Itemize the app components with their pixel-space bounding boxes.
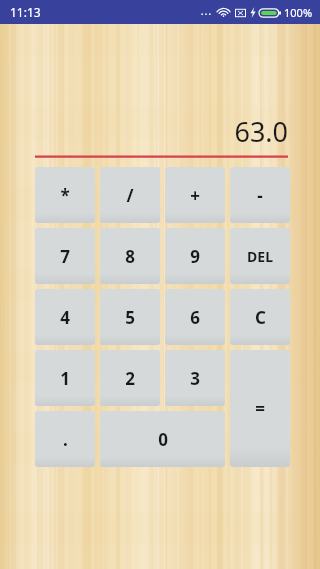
staticText: 100% [284,5,313,20]
button[interactable]: 4 [35,289,95,345]
staticText: 4 [60,306,70,329]
staticText: 11:13 [10,4,41,20]
staticText: . [63,428,68,451]
button[interactable]: + [165,167,225,223]
button[interactable]: 2 [100,350,160,406]
button[interactable]: 6 [165,289,225,345]
button[interactable]: - [230,167,290,223]
staticText: 1 [60,367,70,390]
button[interactable]: 1 [35,350,95,406]
button[interactable]: 0 [100,411,225,467]
staticText: * [60,184,70,207]
staticText: DEL [247,247,273,266]
staticText: - [257,184,263,207]
button[interactable]: DEL [230,228,290,284]
staticText: 5 [125,306,135,329]
button[interactable]: 5 [100,289,160,345]
staticText: 6 [190,306,200,329]
button[interactable]: * [35,167,95,223]
button[interactable]: = [230,350,290,467]
button[interactable]: 3 [165,350,225,406]
button[interactable]: 8 [100,228,160,284]
staticText: 8 [125,245,135,268]
staticText: 2 [125,367,135,390]
staticText: 63.0 [234,113,288,150]
staticText: + [190,184,200,207]
button[interactable]: / [100,167,160,223]
staticText: 3 [190,367,200,390]
button[interactable]: . [35,411,95,467]
staticText: / [126,184,134,207]
button[interactable]: 7 [35,228,95,284]
staticText: 9 [190,245,200,268]
button[interactable]: 9 [165,228,225,284]
staticText: 0 [158,428,168,451]
button[interactable]: C [230,289,290,345]
staticText: = [255,397,265,420]
staticText: C [255,306,266,329]
staticText: 7 [60,245,70,268]
